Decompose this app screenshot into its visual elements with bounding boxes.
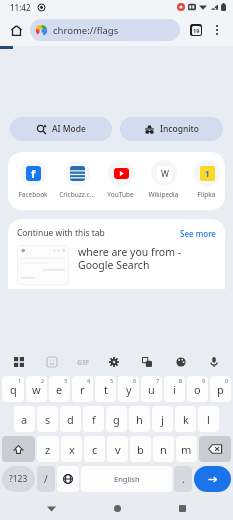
button[interactable]: Emoji [43, 353, 61, 371]
staticText: 6 [133, 377, 137, 384]
button[interactable]: ?123 [2, 466, 35, 492]
staticText: l [207, 412, 210, 427]
staticText: z [45, 442, 51, 457]
staticText: g [113, 412, 120, 427]
staticText: v [115, 442, 121, 457]
staticText: where are you from - Google Search [78, 245, 216, 272]
staticText: Continue with this tab [17, 227, 105, 239]
staticText: s [45, 412, 51, 427]
staticText: 2 [41, 377, 45, 384]
button[interactable]: Home [6, 20, 26, 40]
staticText: ?123 [9, 473, 28, 485]
staticText: j [161, 412, 164, 427]
staticText: Wikipedia [145, 190, 182, 199]
button[interactable]: Tab switcher, 19 tabs [185, 19, 207, 41]
button[interactable]: j [152, 406, 173, 432]
staticText: d [67, 412, 74, 427]
button[interactable]: o [187, 376, 208, 402]
staticText: YouTube [102, 190, 139, 199]
staticText: w [32, 382, 41, 397]
button[interactable]: . [174, 466, 192, 492]
button[interactable]: Home [102, 496, 132, 520]
button[interactable]: p [210, 376, 231, 402]
button[interactable]: h [129, 406, 150, 432]
button[interactable]: r [72, 376, 93, 402]
button[interactable]: Voice input [205, 353, 223, 371]
staticText: i [173, 382, 176, 397]
button[interactable]: u [141, 376, 162, 402]
button[interactable]: a [14, 406, 35, 432]
staticText: k [183, 412, 189, 427]
button[interactable]: chrome://flags [30, 19, 180, 41]
staticText: y [126, 382, 132, 397]
button[interactable]: Back [36, 496, 66, 520]
button[interactable]: Cricbuzz.co... [58, 160, 96, 199]
button[interactable]: w [26, 376, 47, 402]
button[interactable]: Incognito [120, 117, 223, 141]
button[interactable]: More options [207, 20, 227, 40]
button[interactable]: f [83, 406, 104, 432]
button[interactable]: y [118, 376, 139, 402]
button[interactable]: e [49, 376, 70, 402]
button[interactable]: l [198, 406, 219, 432]
button[interactable]: f [14, 160, 52, 199]
button[interactable]: Settings [105, 353, 123, 371]
button[interactable]: Recent apps [167, 496, 197, 520]
staticText: 4 [87, 377, 91, 384]
button[interactable]: Shift [2, 436, 35, 462]
button[interactable]: Enter [194, 466, 231, 492]
staticText: chrome://flags [53, 24, 119, 37]
staticText: o [194, 382, 201, 397]
staticText: f [31, 166, 36, 181]
staticText: a [21, 412, 28, 427]
staticText: m [181, 442, 192, 457]
staticText: English [114, 474, 140, 484]
button[interactable]: YouTube [102, 160, 139, 199]
staticText: . [182, 472, 185, 486]
button[interactable]: g [106, 406, 127, 432]
button[interactable]: d [60, 406, 81, 432]
button[interactable]: n [153, 436, 174, 462]
button[interactable]: c [84, 436, 105, 462]
button[interactable]: Themes [172, 353, 190, 371]
button[interactable]: b [130, 436, 151, 462]
button[interactable]: English [81, 466, 172, 492]
button[interactable]: Continue with this tab [8, 219, 225, 289]
button[interactable]: AI Mode [10, 117, 112, 141]
button[interactable]: i [164, 376, 185, 402]
button[interactable]: m [176, 436, 197, 462]
button[interactable]: v [107, 436, 128, 462]
button[interactable]: s [37, 406, 58, 432]
staticText: Cricbuzz.co... [58, 190, 96, 199]
staticText: n [160, 442, 167, 457]
button[interactable]: k [175, 406, 196, 432]
button[interactable]: W [145, 160, 182, 199]
button[interactable]: Apps [10, 353, 28, 371]
button[interactable]: z [37, 436, 59, 462]
button[interactable]: 1 [188, 160, 225, 199]
button[interactable]: See more [180, 228, 216, 239]
staticText: b [137, 442, 144, 457]
button[interactable]: q [2, 376, 24, 402]
staticText: c [92, 442, 98, 457]
staticText: 11:42 [10, 2, 31, 13]
staticText: e [56, 382, 63, 397]
button[interactable]: t [95, 376, 116, 402]
staticText: / [44, 472, 48, 486]
staticText: q [10, 382, 17, 397]
button[interactable]: Translate [138, 353, 156, 371]
staticText: f [92, 412, 96, 427]
staticText: 7 [156, 377, 160, 384]
staticText: h [136, 412, 143, 427]
staticText: t [104, 382, 108, 397]
staticText: Flipka [188, 190, 225, 199]
button[interactable]: Backspace [199, 436, 231, 462]
staticText: r [80, 382, 85, 397]
button[interactable]: GIF [77, 357, 90, 367]
staticText: See more [180, 228, 216, 239]
staticText: Facebook [14, 190, 52, 199]
staticText: 3 [64, 377, 68, 384]
button[interactable]: / [37, 466, 55, 492]
button[interactable]: Change language [57, 466, 79, 492]
button[interactable]: x [61, 436, 82, 462]
